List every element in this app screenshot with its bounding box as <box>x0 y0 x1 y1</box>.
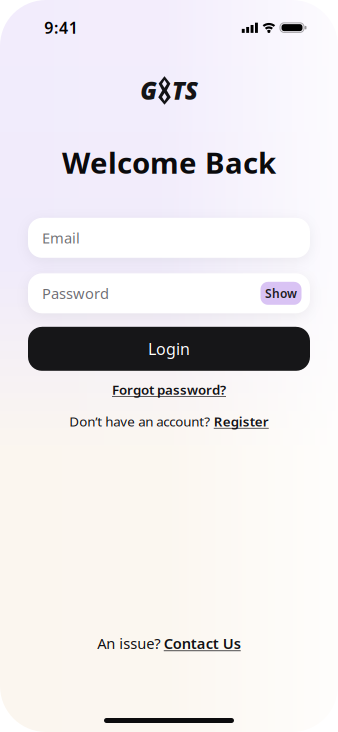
staticText: Login <box>148 338 190 359</box>
staticText: Show <box>265 285 297 301</box>
staticText: 9:41 <box>44 17 78 38</box>
button[interactable]: Forgot password? <box>112 381 226 398</box>
staticText: Register <box>214 412 269 430</box>
staticText: G <box>140 74 157 106</box>
button[interactable]: Email <box>28 218 310 258</box>
button[interactable]: Contact Us <box>164 633 241 653</box>
staticText: Forgot password? <box>112 381 226 398</box>
button[interactable]: Login <box>28 327 310 371</box>
button[interactable]: Password <box>28 273 310 313</box>
staticText: An issue? <box>97 633 160 653</box>
staticText: Password <box>42 284 109 303</box>
button[interactable]: Show <box>260 282 301 305</box>
staticText: TS <box>172 74 198 106</box>
staticText: Email <box>42 228 80 248</box>
staticText: Welcome Back <box>62 143 276 182</box>
button[interactable]: Register <box>214 412 269 430</box>
staticText: Contact Us <box>164 633 241 653</box>
staticText: Don’t have an account? <box>69 412 210 430</box>
